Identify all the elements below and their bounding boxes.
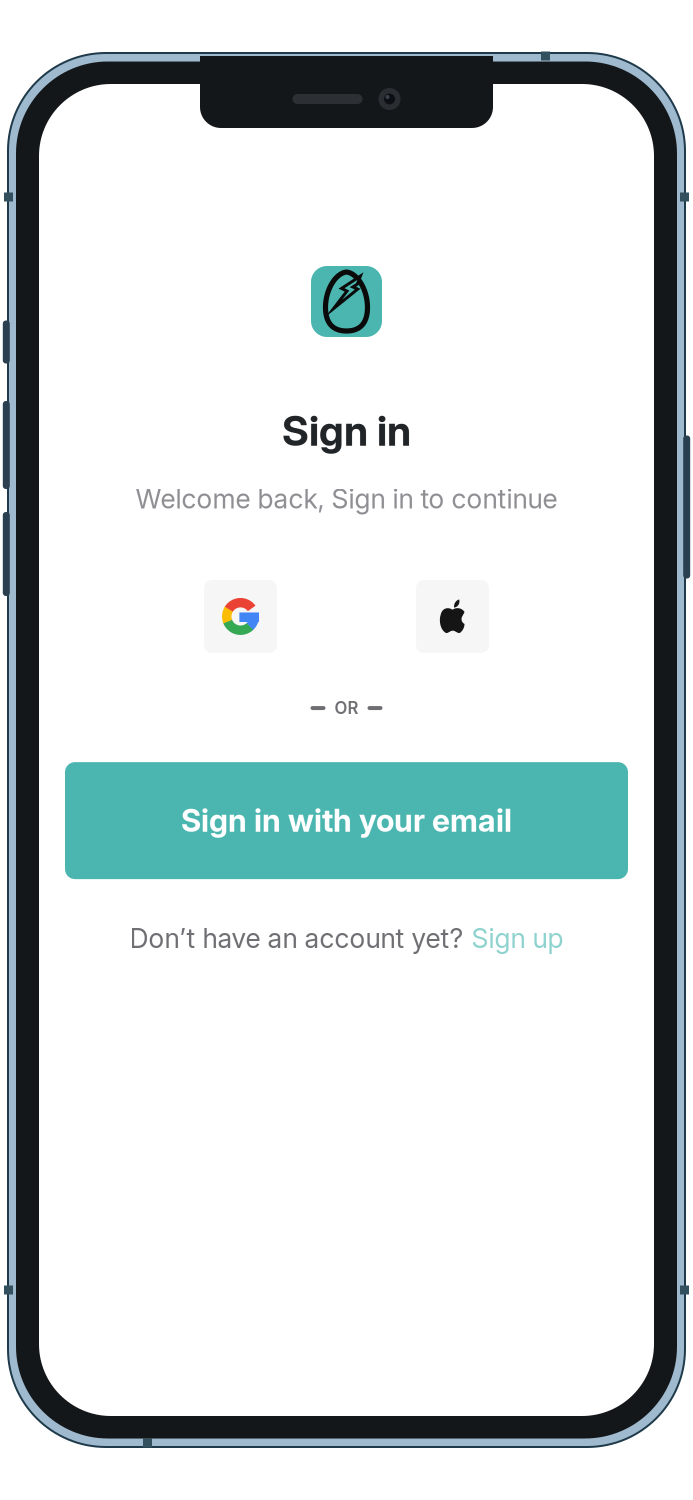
staticText: Don’t have an account yet?	[129, 922, 463, 954]
button[interactable]: Continue with Google	[204, 580, 277, 653]
button[interactable]: Continue with Apple	[416, 580, 489, 653]
button[interactable]: Sign up	[471, 922, 563, 954]
staticText: Sign up	[471, 922, 563, 954]
staticText: Welcome back, Sign in to continue	[135, 483, 557, 515]
button[interactable]: Sign in with your email	[65, 762, 628, 879]
staticText: Sign in	[282, 406, 411, 456]
staticText: OR	[334, 698, 358, 718]
staticText: Sign in with your email	[181, 802, 512, 839]
